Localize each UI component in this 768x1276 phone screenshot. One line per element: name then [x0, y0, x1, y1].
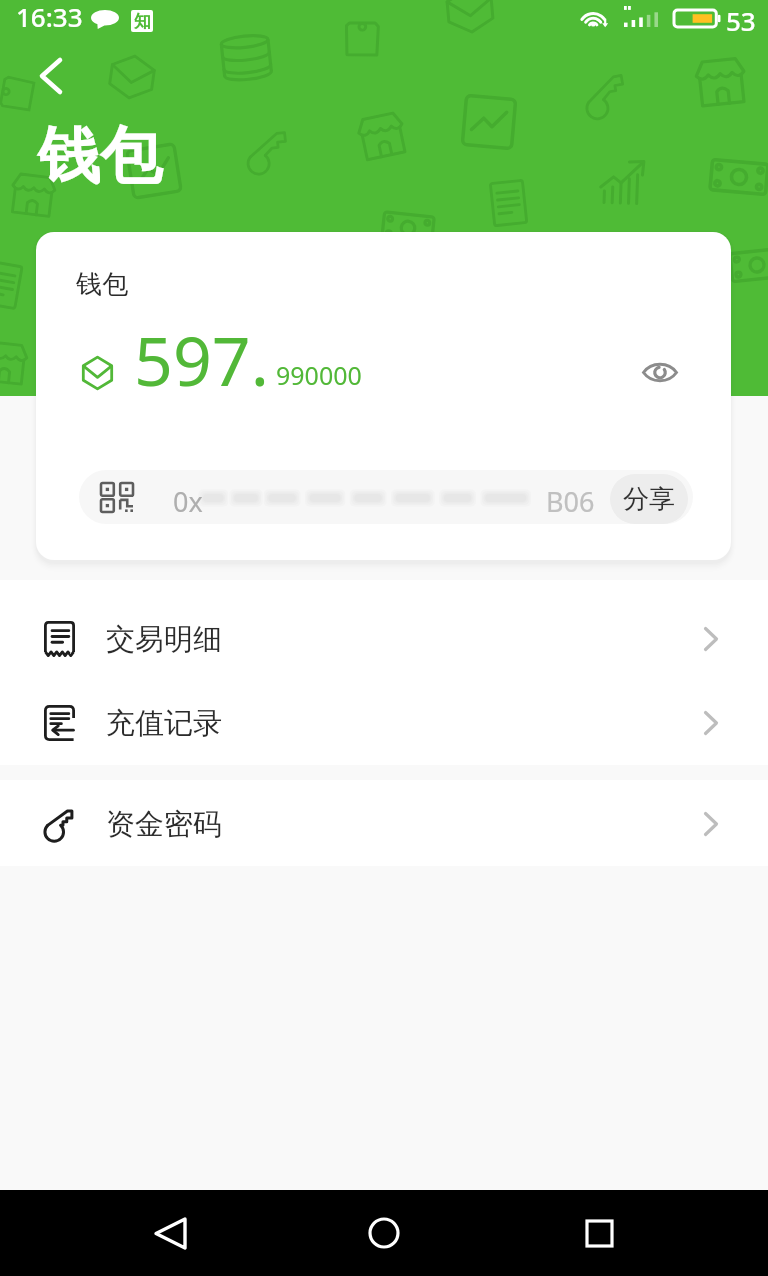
staticText: 充值记录 — [106, 705, 222, 742]
button[interactable]: Toggle balance visibility — [632, 344, 688, 400]
staticText: 分享 — [623, 483, 675, 516]
staticText: 资金密码 — [106, 806, 222, 843]
button[interactable]: 充值记录 — [0, 681, 768, 765]
staticText: B06 — [546, 483, 595, 520]
button[interactable]: Wallet address, copy — [79, 470, 693, 524]
button[interactable]: 分享 — [610, 474, 688, 524]
button[interactable]: 交易明细 — [0, 597, 768, 681]
button[interactable]: Back — [15, 40, 87, 112]
staticText: 990000 — [276, 358, 362, 392]
staticText: 交易明细 — [106, 621, 222, 658]
staticText: 0x — [173, 483, 203, 520]
staticText: 16:33 — [16, 0, 83, 34]
staticText: 钱包 — [38, 117, 162, 195]
button[interactable]: Recent apps — [554, 1190, 644, 1276]
staticText: 597. — [134, 313, 269, 406]
staticText: 53 — [726, 3, 756, 38]
button[interactable]: 资金密码 — [0, 782, 768, 866]
button[interactable]: Home — [339, 1190, 429, 1276]
button[interactable]: Back — [125, 1190, 215, 1276]
staticText: 知 — [134, 11, 151, 32]
staticText: 钱包 — [76, 268, 128, 301]
